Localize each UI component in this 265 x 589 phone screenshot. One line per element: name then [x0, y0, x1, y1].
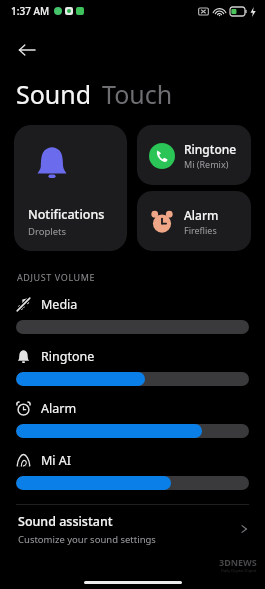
- button[interactable]: Alarm: [137, 191, 251, 251]
- staticText: Sound assistant: [18, 513, 113, 530]
- button[interactable]: Notifications: [14, 125, 127, 251]
- staticText: Touch: [102, 77, 173, 111]
- button[interactable]: Sound assistant: [0, 505, 265, 553]
- staticText: Mi (Remix): [184, 158, 229, 170]
- button[interactable]: Ringtone: [0, 348, 265, 386]
- staticText: Notifications: [28, 206, 105, 223]
- staticText: Ringtone: [41, 348, 95, 365]
- staticText: 1:37 AM: [11, 4, 50, 18]
- button[interactable]: Media: [0, 296, 265, 334]
- staticText: ADJUST VOLUME: [17, 271, 96, 283]
- button[interactable]: Mi AI: [0, 452, 265, 490]
- button[interactable]: Sound: [16, 77, 92, 111]
- staticText: Sound: [16, 77, 92, 111]
- button[interactable]: Alarm: [0, 400, 265, 438]
- button[interactable]: Ringtone: [137, 125, 251, 185]
- button[interactable]: Touch: [102, 77, 173, 111]
- staticText: Customize your sound settings: [18, 533, 156, 546]
- staticText: Daily Digital Digest: [221, 568, 257, 573]
- staticText: Mi AI: [41, 452, 72, 469]
- staticText: 3DNEWS: [219, 556, 257, 568]
- staticText: Ringtone: [184, 141, 237, 157]
- staticText: Droplets: [28, 225, 67, 238]
- staticText: Alarm: [184, 207, 219, 223]
- button[interactable]: Back: [8, 31, 46, 69]
- staticText: Alarm: [41, 400, 77, 417]
- staticText: Fireflies: [184, 224, 217, 236]
- staticText: Media: [41, 296, 78, 313]
